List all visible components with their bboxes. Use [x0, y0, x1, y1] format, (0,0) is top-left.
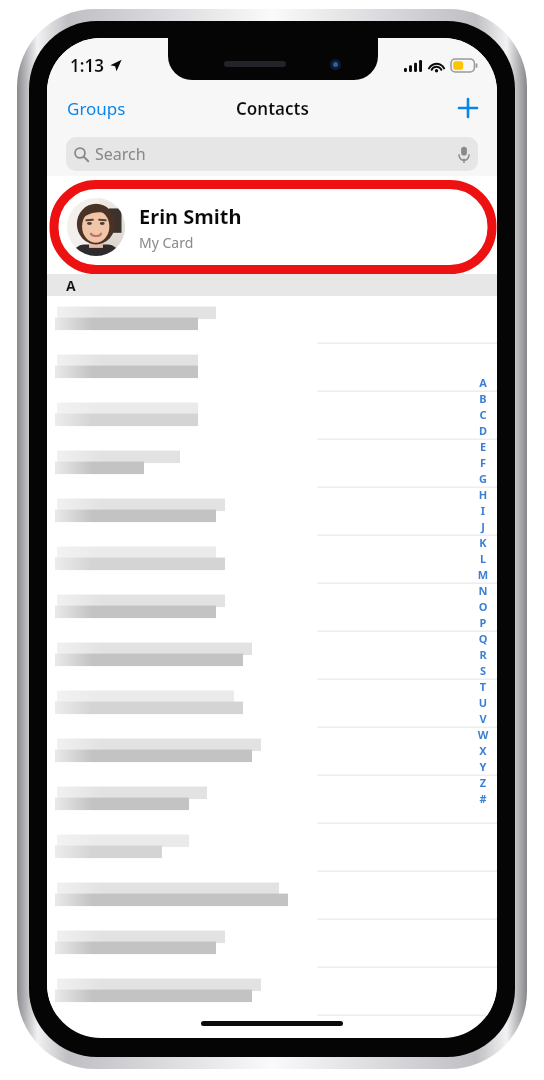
button[interactable]: [47, 296, 497, 344]
staticText: K: [475, 535, 491, 551]
staticText: N: [475, 583, 491, 599]
staticText: My Card: [139, 233, 194, 252]
staticText: E: [475, 439, 491, 455]
staticText: G: [475, 471, 491, 487]
staticText: Z: [475, 775, 491, 791]
staticText: Search: [95, 143, 146, 165]
button[interactable]: [47, 968, 497, 1016]
staticText: A: [475, 375, 491, 391]
staticText: H: [475, 487, 491, 503]
button[interactable]: [47, 584, 497, 632]
staticText: O: [475, 599, 491, 615]
staticText: T: [475, 679, 491, 695]
button[interactable]: [47, 920, 497, 968]
staticText: W: [475, 727, 491, 743]
staticText: Groups: [67, 97, 126, 120]
staticText: L: [475, 551, 491, 567]
button[interactable]: [47, 344, 497, 392]
button[interactable]: [47, 632, 497, 680]
staticText: Contacts: [236, 97, 309, 120]
staticText: X: [475, 743, 491, 759]
button[interactable]: [47, 536, 497, 584]
staticText: F: [475, 455, 491, 471]
button[interactable]: [47, 824, 497, 872]
button[interactable]: Erin Smith: [47, 184, 497, 270]
staticText: Q: [475, 631, 491, 647]
button[interactable]: [47, 776, 497, 824]
staticText: B: [475, 391, 491, 407]
button[interactable]: [47, 488, 497, 536]
staticText: #: [475, 791, 491, 807]
button[interactable]: [47, 728, 497, 776]
button[interactable]: Search: [66, 137, 478, 171]
button[interactable]: Alphabet index: [475, 375, 491, 807]
staticText: M: [475, 567, 491, 583]
staticText: Y: [475, 759, 491, 775]
staticText: Erin Smith: [139, 203, 242, 230]
staticText: V: [475, 711, 491, 727]
staticText: U: [475, 695, 491, 711]
staticText: I: [475, 503, 491, 519]
staticText: P: [475, 615, 491, 631]
button[interactable]: Add contact: [439, 89, 497, 127]
staticText: 1:13: [70, 54, 104, 77]
staticText: S: [475, 663, 491, 679]
staticText: J: [475, 519, 491, 535]
button[interactable]: [47, 440, 497, 488]
staticText: R: [475, 647, 491, 663]
button[interactable]: [47, 680, 497, 728]
button[interactable]: Groups: [47, 89, 146, 128]
staticText: C: [475, 407, 491, 423]
button[interactable]: [47, 392, 497, 440]
staticText: A: [66, 276, 76, 295]
button[interactable]: [47, 872, 497, 920]
staticText: D: [475, 423, 491, 439]
